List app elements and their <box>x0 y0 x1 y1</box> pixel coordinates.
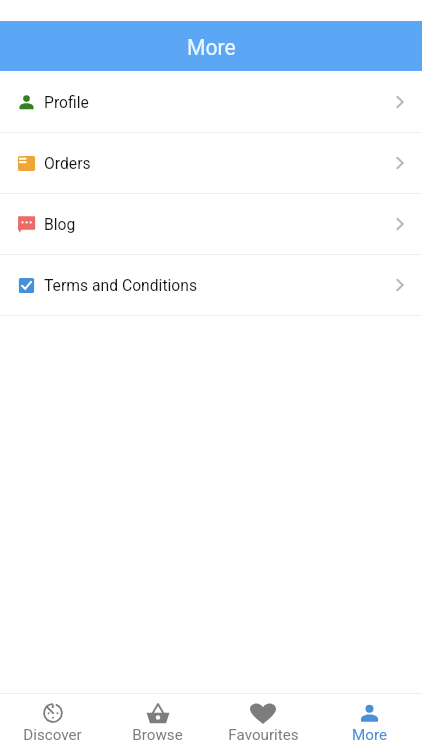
button[interactable]: Blog <box>0 194 422 255</box>
button[interactable]: Orders <box>0 133 422 194</box>
staticText: More <box>352 726 387 744</box>
staticText: Favourites <box>228 726 299 744</box>
staticText: Orders <box>44 154 91 172</box>
button[interactable]: Terms and Conditions <box>0 255 422 316</box>
staticText: Blog <box>44 215 76 233</box>
button[interactable]: More <box>316 694 422 750</box>
staticText: Profile <box>44 93 89 111</box>
staticText: Browse <box>132 726 183 744</box>
staticText: More <box>187 35 236 60</box>
staticText: Terms and Conditions <box>44 276 198 294</box>
button[interactable]: Profile <box>0 72 422 133</box>
staticText: Discover <box>23 726 82 744</box>
button[interactable]: Discover <box>0 694 105 750</box>
button[interactable]: Browse <box>105 694 210 750</box>
button[interactable]: Favourites <box>210 694 316 750</box>
